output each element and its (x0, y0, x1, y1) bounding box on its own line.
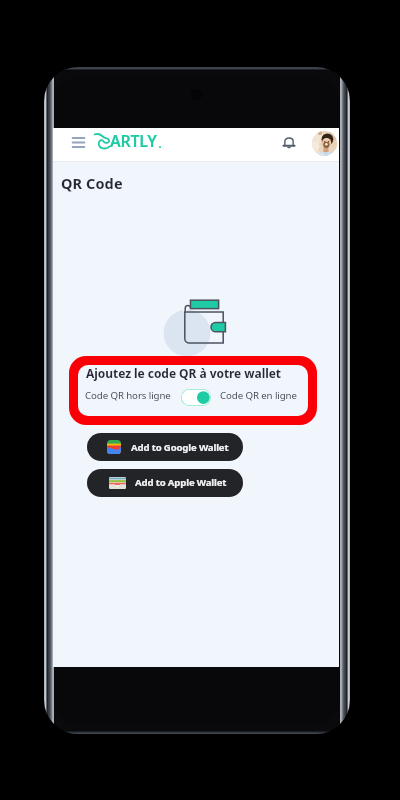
staticText: Code QR en ligne (220, 389, 297, 402)
staticText: Add to Apple Wallet (135, 476, 227, 489)
button[interactable]: Add to Apple Wallet (87, 469, 243, 497)
staticText: ARTLY (110, 130, 157, 152)
staticText: QR Code (61, 173, 123, 193)
staticText: Add to Google Wallet (131, 441, 229, 454)
button[interactable]: Profile (312, 131, 337, 156)
staticText: Ajoutez le code QR à votre wallet (86, 365, 281, 381)
button[interactable]: Menu (65, 128, 91, 156)
button[interactable]: Toggle online QR code (181, 389, 211, 406)
button[interactable]: Notifications (276, 129, 302, 155)
button[interactable]: Add to Google Wallet (87, 433, 243, 461)
staticText: Code QR hors ligne (85, 389, 171, 402)
button[interactable]: Ajoutez le code QR à votre wallet (78, 365, 308, 416)
